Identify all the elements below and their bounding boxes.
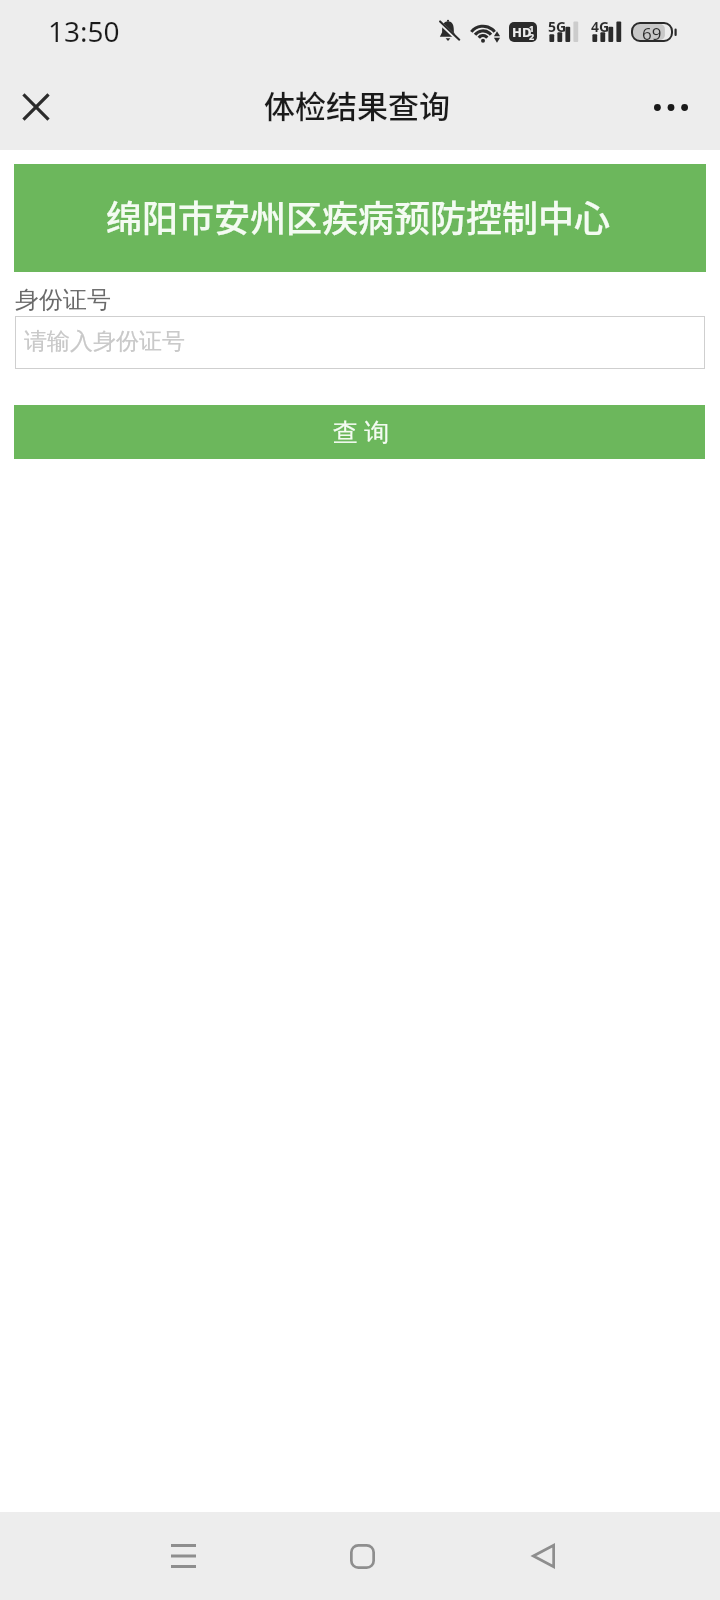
staticText: 身份证号 bbox=[15, 285, 111, 315]
staticText: 请输入身份证号 bbox=[24, 327, 185, 356]
button[interactable]: More options bbox=[634, 69, 706, 141]
staticText: 绵阳市安州区疾病预防控制中心 bbox=[106, 190, 611, 242]
staticText: 体检结果查询 bbox=[264, 82, 450, 127]
button[interactable]: Back bbox=[503, 1516, 583, 1596]
button[interactable]: Close bbox=[0, 69, 72, 141]
button[interactable]: 查 询 bbox=[14, 405, 705, 459]
staticText: 5G bbox=[548, 17, 567, 36]
staticText: 查 询 bbox=[333, 414, 390, 448]
staticText: HD bbox=[512, 23, 532, 41]
button[interactable]: Home bbox=[322, 1516, 402, 1596]
staticText: 69 bbox=[642, 22, 662, 42]
staticText: 2 bbox=[529, 30, 535, 42]
staticText: 4G bbox=[591, 17, 610, 36]
button[interactable]: 请输入身份证号 bbox=[15, 316, 705, 369]
staticText: 13:50 bbox=[48, 12, 120, 50]
button[interactable]: Recent apps bbox=[143, 1516, 223, 1596]
staticText: 1 bbox=[529, 22, 535, 34]
